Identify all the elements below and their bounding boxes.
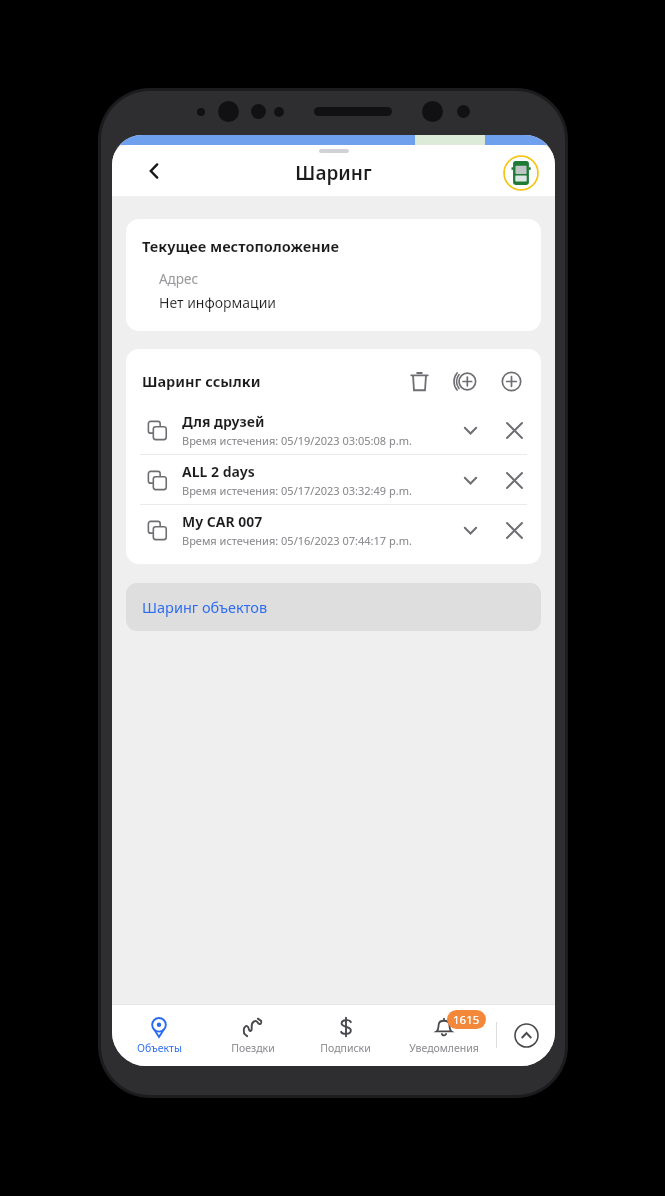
button[interactable]: Add broadcast link bbox=[445, 361, 485, 401]
button[interactable]: Remove bbox=[497, 513, 531, 547]
button[interactable]: Copy link bbox=[140, 413, 174, 447]
staticText: My CAR 007 bbox=[182, 512, 263, 531]
button[interactable]: Expand bbox=[453, 413, 487, 447]
button[interactable]: Vehicle bbox=[503, 155, 539, 191]
button[interactable]: Copy link bbox=[140, 463, 174, 497]
staticText: Шаринг ссылки bbox=[142, 371, 261, 391]
staticText: Шаринг объектов bbox=[142, 597, 268, 617]
button[interactable]: Back bbox=[134, 151, 174, 191]
staticText: Поездки bbox=[231, 1041, 275, 1055]
button[interactable]: Copy link bbox=[126, 505, 541, 554]
staticText: Время истечения: 05/19/2023 03:05:08 p.m… bbox=[182, 433, 412, 448]
button[interactable]: Remove bbox=[497, 463, 531, 497]
button[interactable]: Collapse bbox=[497, 1004, 555, 1066]
button[interactable]: Copy link bbox=[140, 513, 174, 547]
button[interactable]: Шаринг объектов bbox=[126, 583, 541, 631]
staticText: Адрес bbox=[159, 270, 199, 288]
staticText: Время истечения: 05/16/2023 07:44:17 p.m… bbox=[182, 533, 412, 548]
button[interactable]: Expand bbox=[453, 513, 487, 547]
staticText: Текущее местоположение bbox=[142, 236, 340, 256]
staticText: Нет информации bbox=[159, 293, 277, 312]
button[interactable]: Объекты bbox=[112, 1004, 206, 1066]
staticText: Уведомления bbox=[409, 1041, 479, 1055]
button[interactable]: Remove bbox=[497, 413, 531, 447]
button[interactable]: Delete bbox=[399, 361, 439, 401]
button[interactable]: Copy link bbox=[126, 405, 541, 455]
staticText: Объекты bbox=[137, 1041, 182, 1055]
button[interactable]: Expand bbox=[453, 463, 487, 497]
staticText: Для друзей bbox=[182, 412, 265, 431]
staticText: Подписки bbox=[320, 1041, 371, 1055]
button[interactable]: Поездки bbox=[206, 1004, 299, 1066]
staticText: Время истечения: 05/17/2023 03:32:49 p.m… bbox=[182, 483, 412, 498]
staticText: Шаринг bbox=[295, 160, 372, 186]
button[interactable]: Уведомления bbox=[392, 1004, 496, 1066]
button[interactable]: Текущее местоположение bbox=[126, 219, 541, 331]
button[interactable]: Подписки bbox=[299, 1004, 392, 1066]
button[interactable]: Copy link bbox=[126, 455, 541, 505]
staticText: 1615 bbox=[453, 1012, 480, 1028]
button[interactable]: Add link bbox=[491, 361, 531, 401]
staticText: ALL 2 days bbox=[182, 462, 255, 481]
